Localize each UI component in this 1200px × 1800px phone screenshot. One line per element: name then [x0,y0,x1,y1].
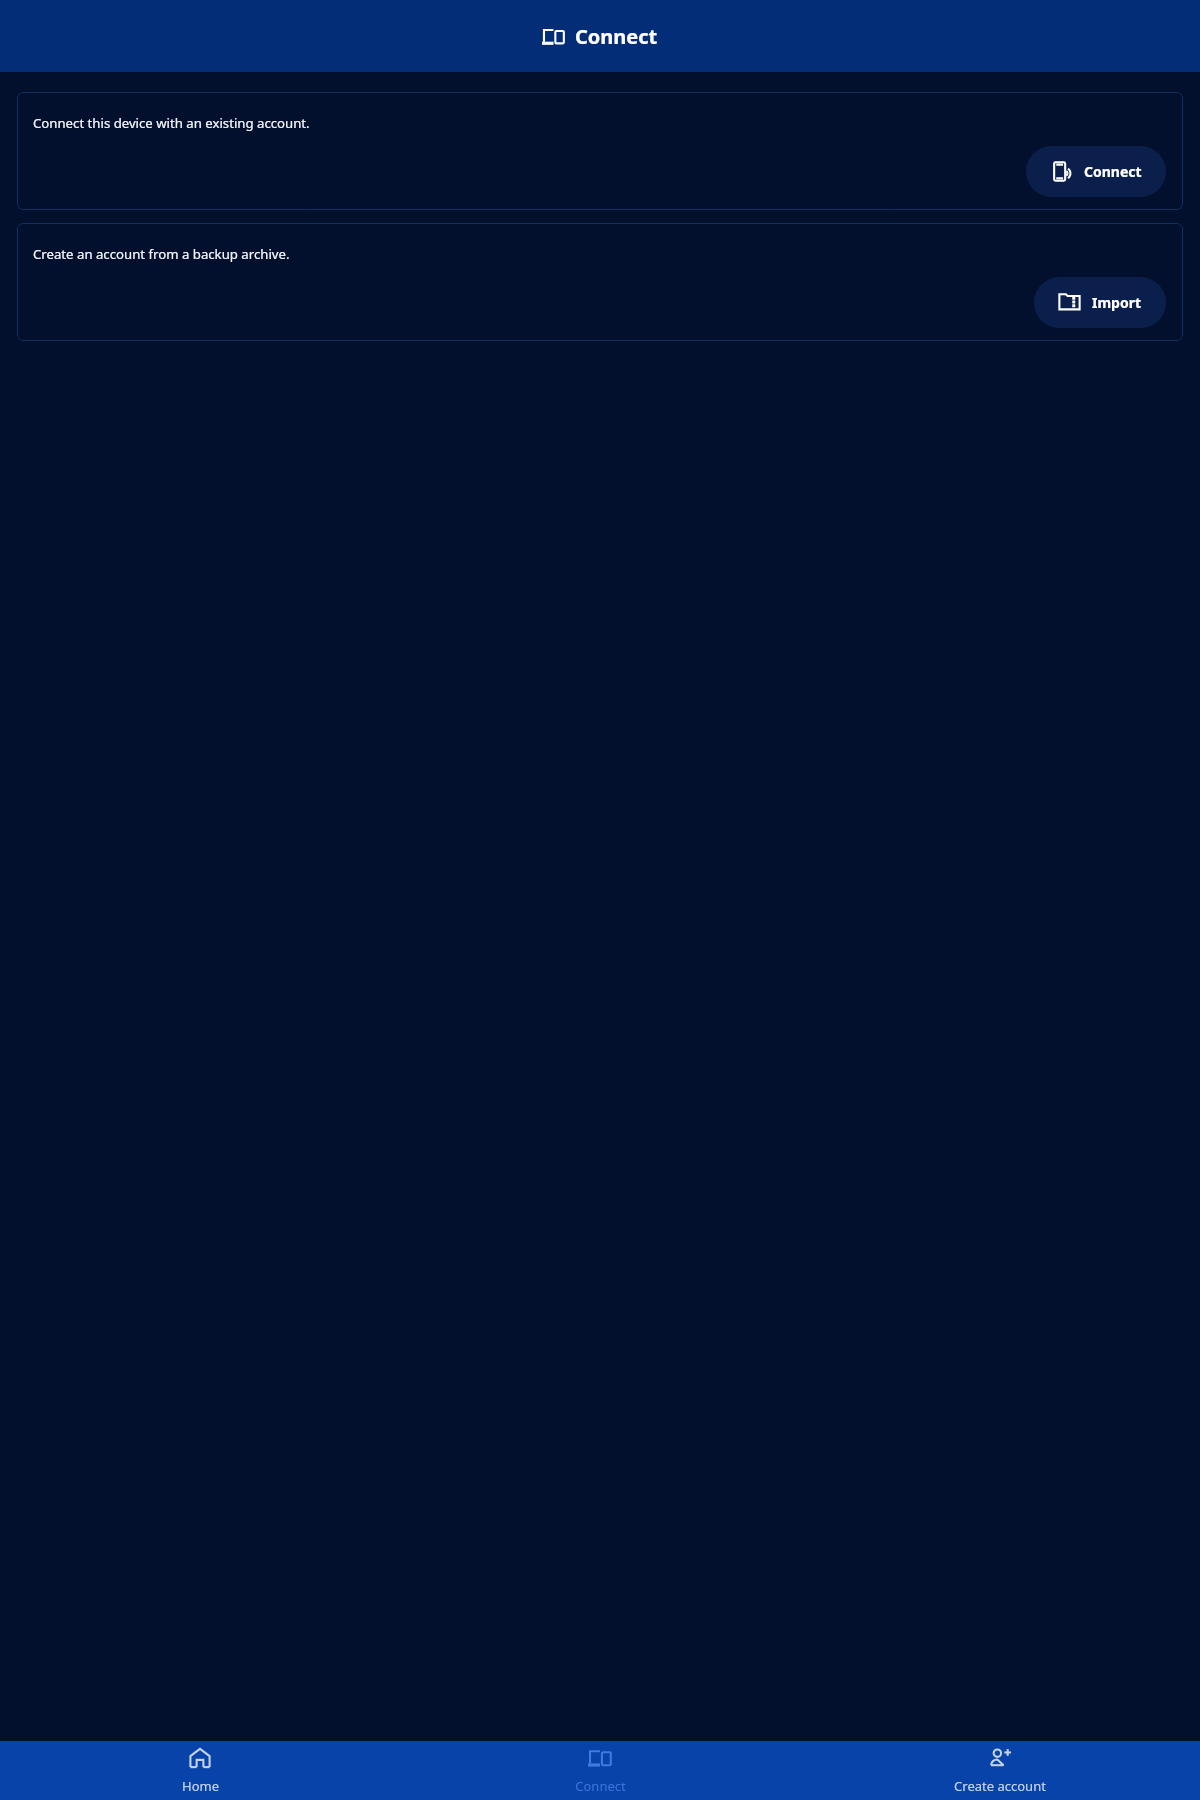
staticText: Create an account from a backup archive. [33,245,290,263]
staticText: Connect [1084,162,1142,181]
button[interactable]: Import [1034,277,1166,328]
button[interactable]: Connect [1026,146,1166,197]
button[interactable]: Create an account from a backup archive. [17,223,1183,341]
button[interactable]: Home [0,1741,400,1800]
staticText: Connect [575,1777,626,1795]
button[interactable]: Create account [800,1741,1200,1800]
staticText: Connect this device with an existing acc… [33,114,310,132]
staticText: Home [182,1777,219,1795]
staticText: Import [1092,293,1142,312]
staticText: Create account [954,1777,1046,1795]
button[interactable]: Connect this device with an existing acc… [17,92,1183,210]
staticText: Connect [575,23,658,50]
button[interactable]: Connect [400,1741,800,1800]
